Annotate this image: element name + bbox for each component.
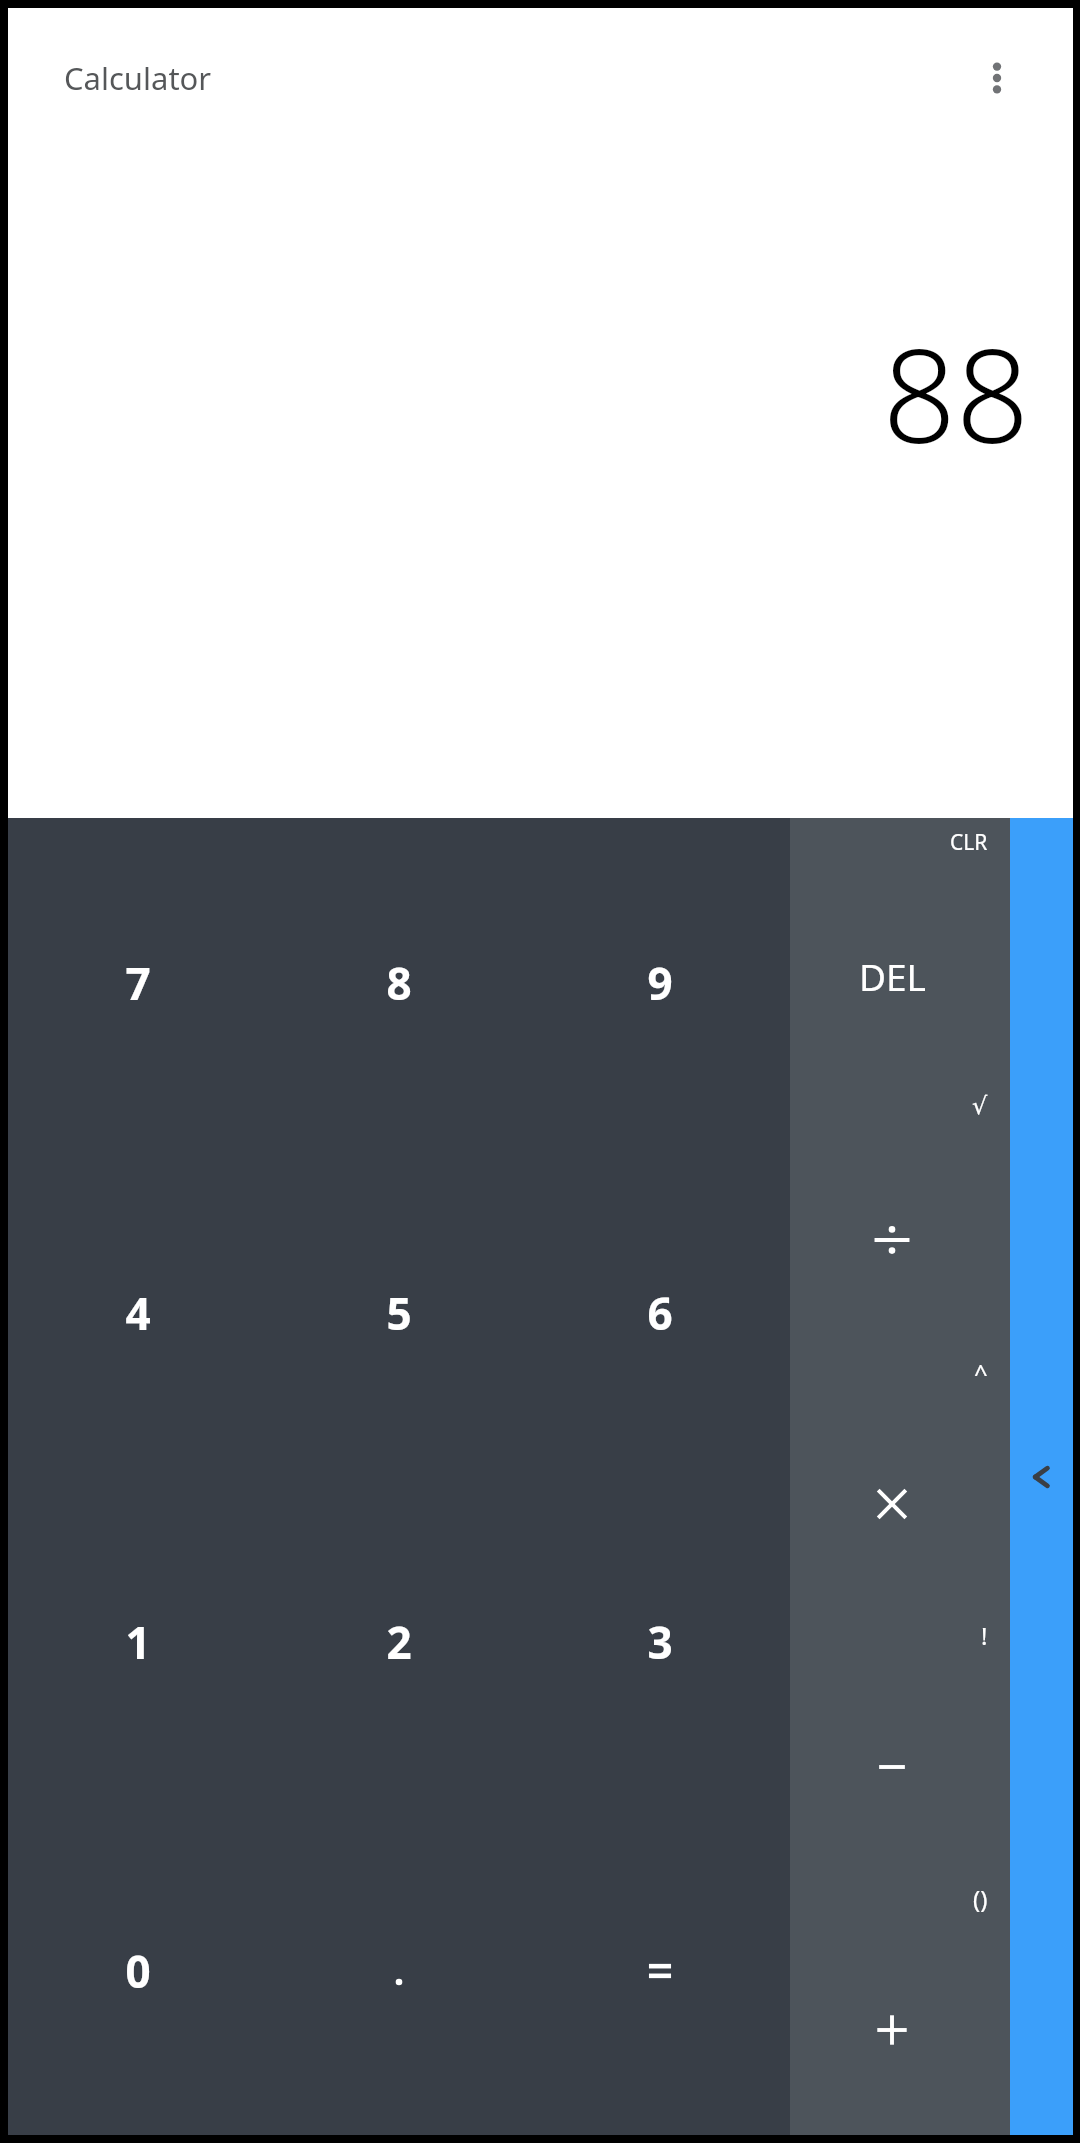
staticText: 9 [647, 953, 673, 1013]
staticText: √ [972, 1092, 988, 1120]
button[interactable]: Equals [529, 1806, 790, 2135]
staticText: ! [981, 1619, 988, 1652]
button[interactable]: 0 [8, 1806, 268, 2135]
button[interactable]: Factorial or subtract [790, 1609, 1010, 1872]
staticText: 7 [125, 953, 151, 1013]
staticText: 88 [882, 306, 1029, 480]
staticText: Calculator [64, 57, 212, 99]
button[interactable]: More options [957, 38, 1037, 118]
button[interactable]: 6 [529, 1148, 790, 1477]
staticText: () [973, 1882, 988, 1915]
staticText: DEL [859, 951, 926, 1001]
button[interactable]: Decimal point [268, 1806, 529, 2135]
button[interactable]: 5 [268, 1148, 529, 1477]
staticText: 2 [386, 1612, 412, 1672]
staticText: ^ [974, 1356, 988, 1389]
staticText: CLR [950, 828, 988, 857]
button[interactable]: Square root or divide [790, 1082, 1010, 1346]
button[interactable]: Parentheses or add [790, 1872, 1010, 2135]
staticText: 0 [125, 1941, 151, 2001]
staticText: 1 [125, 1612, 151, 1672]
staticText: 4 [125, 1283, 151, 1343]
button[interactable]: Clear or delete [790, 818, 1010, 1082]
staticText: 3 [647, 1612, 673, 1672]
button[interactable]: Open advanced panel [1010, 818, 1073, 2135]
button[interactable]: 7 [8, 818, 268, 1148]
button[interactable]: 9 [529, 818, 790, 1148]
button[interactable]: 4 [8, 1148, 268, 1477]
staticText: 6 [647, 1283, 673, 1343]
button[interactable]: Calculator [64, 57, 212, 99]
button[interactable]: 8 [268, 818, 529, 1148]
staticText: 5 [386, 1283, 412, 1343]
button[interactable]: 3 [529, 1477, 790, 1806]
button[interactable]: 1 [8, 1477, 268, 1806]
button[interactable]: 2 [268, 1477, 529, 1806]
button[interactable]: Power or multiply [790, 1346, 1010, 1609]
staticText: 8 [386, 953, 412, 1013]
